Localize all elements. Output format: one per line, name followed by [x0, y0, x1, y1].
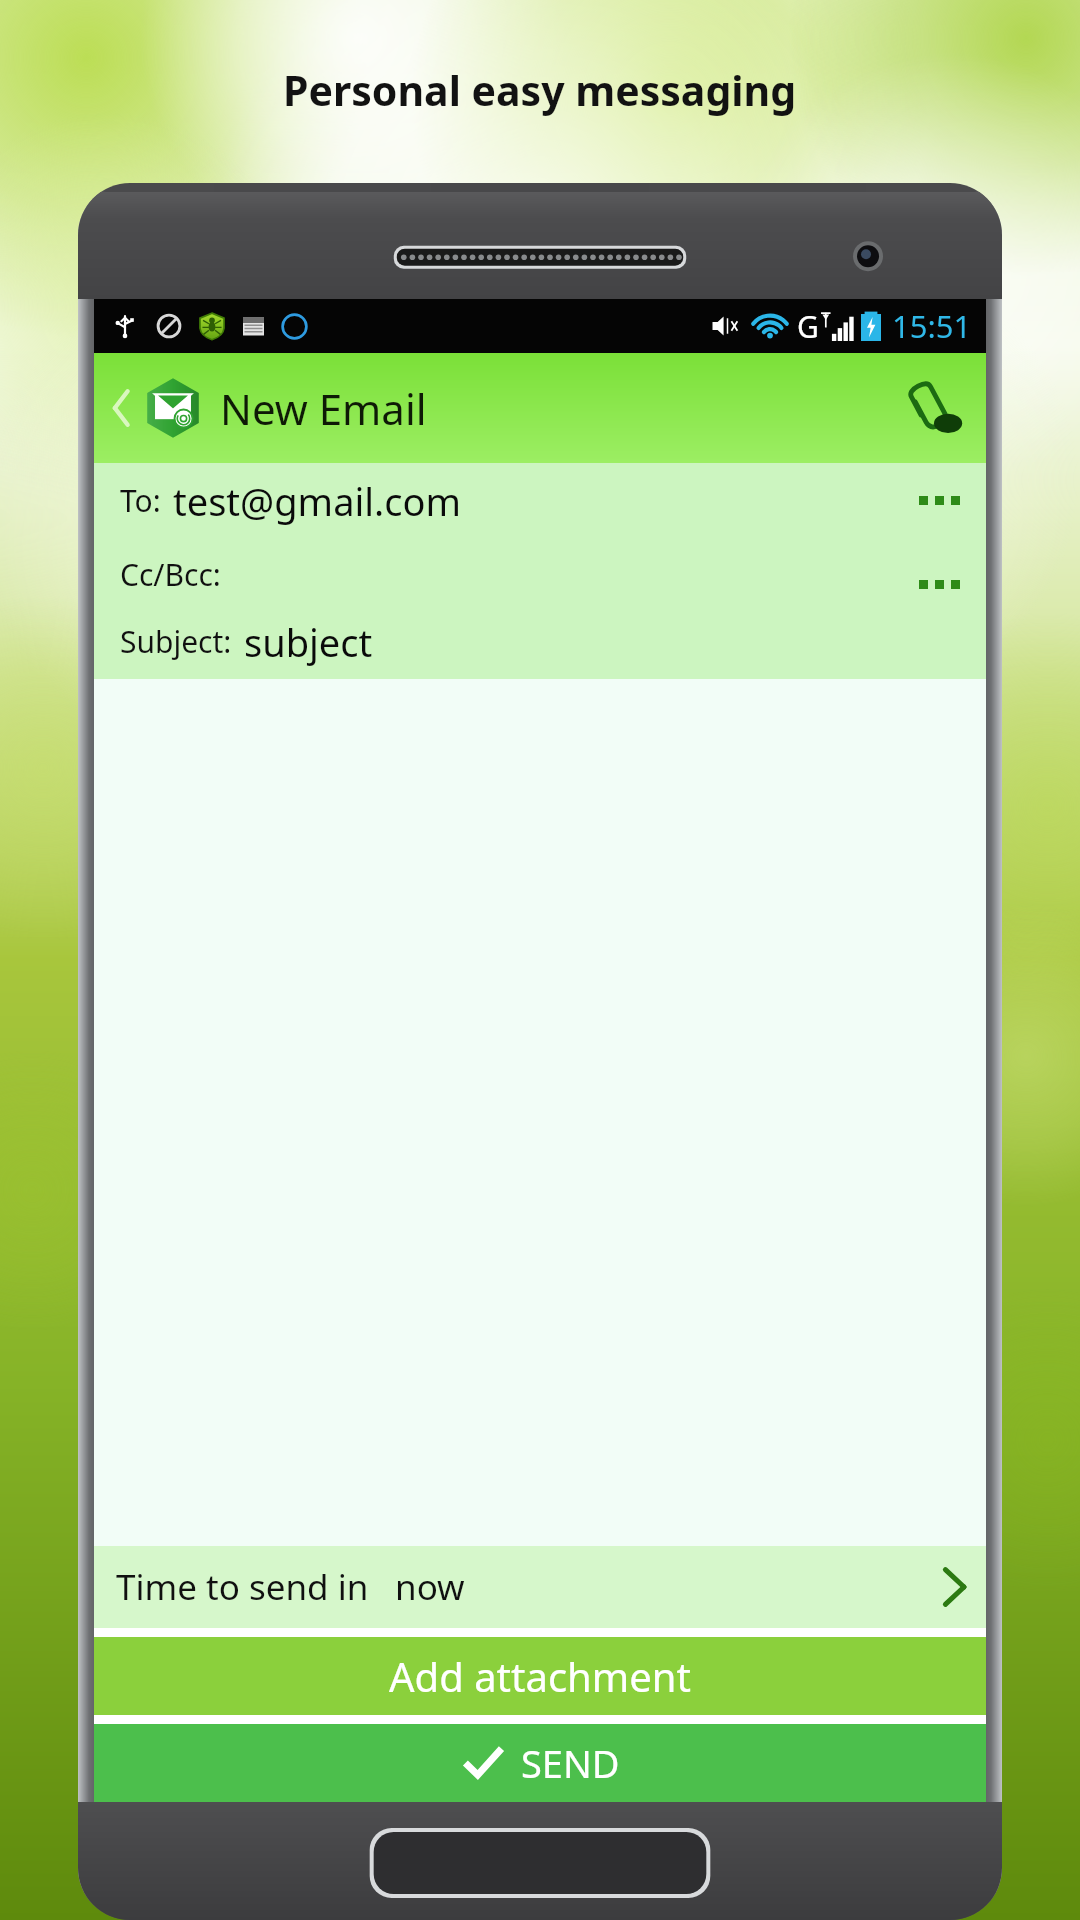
- staticText: SEND: [521, 1737, 620, 1789]
- button[interactable]: SEND: [94, 1724, 986, 1802]
- staticText: Subject:: [120, 621, 232, 662]
- button[interactable]: Attachments: [896, 370, 972, 446]
- staticText: To:: [120, 480, 161, 521]
- staticText: New Email: [220, 380, 427, 437]
- button[interactable]: Cc/Bcc:: [94, 538, 986, 610]
- staticText: Time to send in: [116, 1563, 369, 1611]
- staticText: Cc/Bcc:: [120, 554, 221, 595]
- staticText: test@gmail.com: [173, 475, 462, 527]
- button[interactable]: Time to send in: [94, 1546, 986, 1628]
- staticText: 15:51: [892, 305, 972, 347]
- staticText: subject: [244, 616, 373, 668]
- staticText: G: [797, 306, 819, 347]
- staticText: Personal easy messaging: [283, 62, 797, 118]
- button[interactable]: Add attachment: [94, 1637, 986, 1715]
- button[interactable]: To:: [94, 463, 986, 538]
- staticText: Add attachment: [389, 1649, 691, 1703]
- button[interactable]: Subject:: [94, 610, 986, 673]
- button[interactable]: Back: [106, 386, 136, 430]
- staticText: now: [395, 1563, 465, 1611]
